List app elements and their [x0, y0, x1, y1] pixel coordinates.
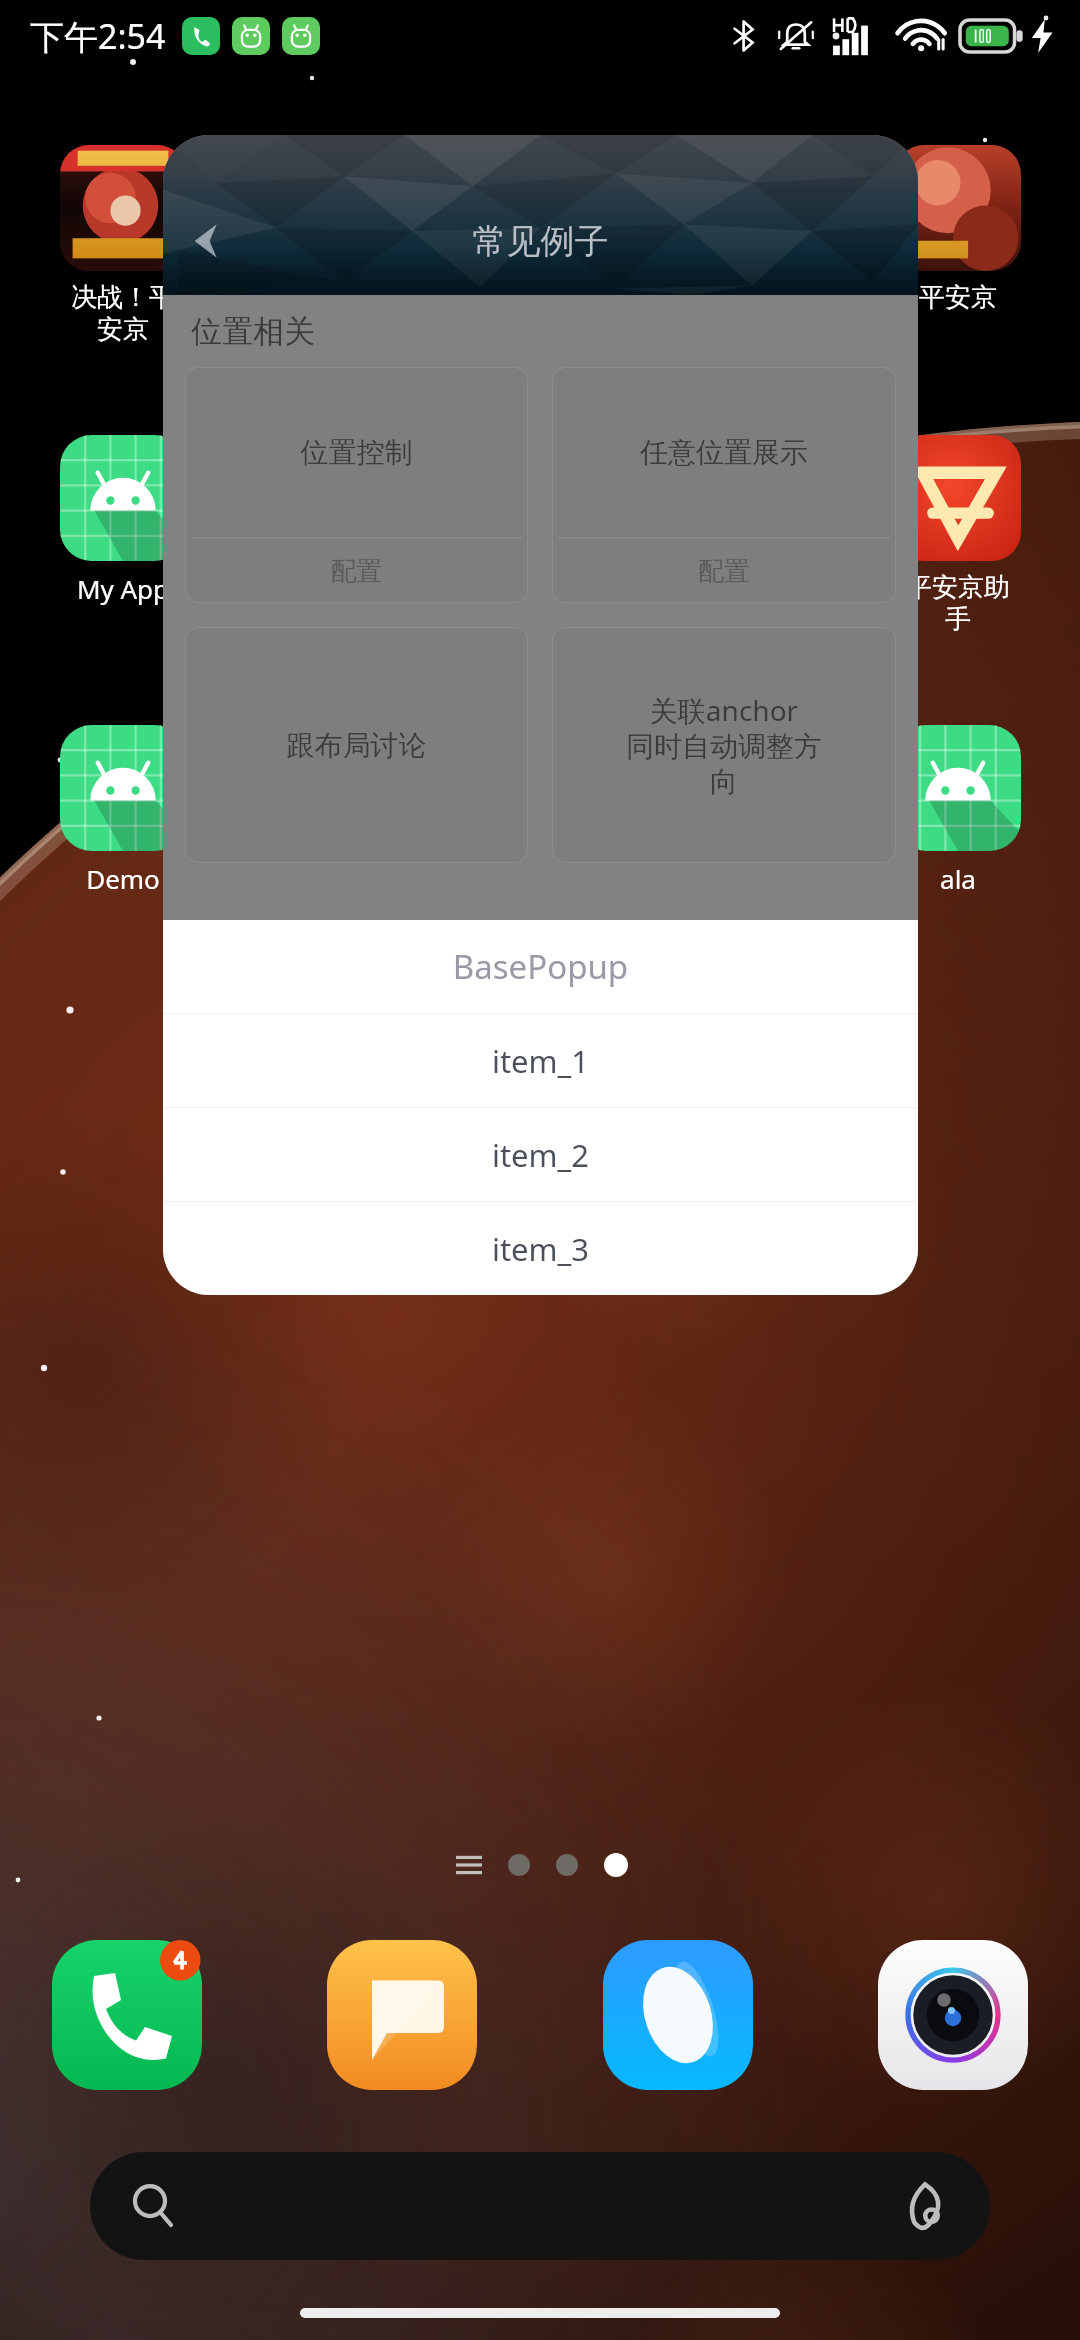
button[interactable]: 任意位置展示 — [552, 367, 896, 603]
button[interactable]: 决战！平安京 — [60, 145, 186, 346]
button[interactable]: 位置控制 — [185, 367, 528, 603]
staticText: ala — [895, 861, 1021, 896]
button[interactable]: My App — [60, 435, 186, 606]
button[interactable]: Messages — [327, 1940, 477, 2090]
staticText: 平安京助手 — [895, 571, 1021, 636]
staticText: 配置 — [552, 555, 896, 588]
staticText: 任意位置展示 — [552, 435, 896, 470]
staticText: 决战！平安京 — [60, 281, 186, 346]
button[interactable]: Camera — [878, 1940, 1028, 2090]
staticText: 下午2:54 — [30, 13, 166, 59]
staticText: My App — [60, 571, 186, 606]
staticText: 位置控制 — [185, 435, 528, 470]
button[interactable]: Demo — [60, 725, 186, 896]
button[interactable]: item_3 — [163, 1202, 918, 1295]
staticText: 关联anchor 同时自动调整方 向 — [552, 691, 896, 799]
button[interactable]: Phone — [52, 1940, 202, 2090]
staticText: item_2 — [163, 1134, 918, 1176]
staticText: 配置 — [185, 555, 528, 588]
button[interactable]: Search — [90, 2152, 990, 2260]
staticText: item_3 — [163, 1228, 918, 1270]
button[interactable]: item_1 — [163, 1014, 918, 1107]
staticText: item_1 — [163, 1040, 918, 1082]
button[interactable]: 平安京助手 — [895, 435, 1021, 636]
button[interactable]: 关联anchor 同时自动调整方 向 — [552, 627, 896, 863]
button[interactable]: item_2 — [163, 1108, 918, 1201]
staticText: 平安京 — [895, 281, 1021, 314]
staticText: 位置相关 — [191, 312, 315, 351]
button[interactable]: All apps — [452, 1848, 486, 1882]
staticText: 跟布局讨论 — [185, 728, 528, 763]
staticText: BasePopup — [163, 944, 918, 989]
button[interactable]: 跟布局讨论 — [185, 627, 528, 863]
button[interactable]: Browser — [603, 1940, 753, 2090]
button[interactable]: BasePopup — [163, 920, 918, 1013]
button[interactable]: ala — [895, 725, 1021, 896]
staticText: Demo — [60, 861, 186, 896]
button[interactable]: 平安京 — [895, 145, 1021, 314]
staticText: 常见例子 — [163, 220, 918, 263]
button[interactable]: Back — [171, 205, 243, 277]
